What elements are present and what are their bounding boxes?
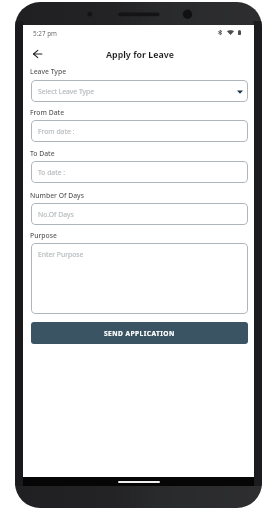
- staticText: Purpose: [30, 231, 57, 240]
- staticText: Apply for Leave: [106, 49, 174, 61]
- staticText: No.Of Days: [38, 210, 74, 219]
- staticText: 5:27 pm: [33, 29, 57, 38]
- button[interactable]: To date :: [31, 161, 248, 183]
- button[interactable]: Select Leave Type: [31, 80, 248, 102]
- staticText: SEND APPLICATION: [104, 329, 175, 338]
- staticText: From date :: [38, 127, 75, 136]
- staticText: Number Of Days: [30, 191, 85, 200]
- button[interactable]: Enter Purpose: [31, 243, 248, 314]
- button[interactable]: SEND APPLICATION: [31, 322, 248, 344]
- staticText: To Date: [30, 149, 55, 158]
- staticText: Leave Type: [30, 67, 67, 76]
- button[interactable]: No.Of Days: [31, 203, 248, 225]
- staticText: From Date: [30, 108, 65, 117]
- staticText: Enter Purpose: [38, 250, 84, 259]
- button[interactable]: From date :: [31, 120, 248, 142]
- staticText: Select Leave Type: [38, 87, 95, 96]
- button[interactable]: Back: [27, 44, 47, 64]
- staticText: To date :: [38, 168, 66, 177]
